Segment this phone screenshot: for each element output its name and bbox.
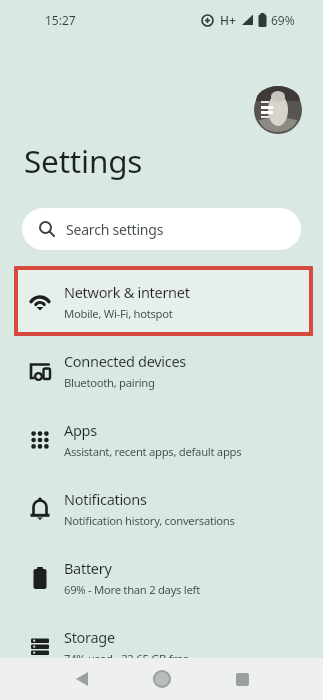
button[interactable]: Search settings <box>22 208 301 250</box>
staticText: Search settings <box>66 220 164 239</box>
staticText: Mobile, Wi-Fi, hotspot <box>64 306 173 321</box>
staticText: Connected devices <box>64 351 186 371</box>
staticText: 69% - More than 2 days left <box>64 582 200 597</box>
button[interactable]: Apps <box>0 405 323 474</box>
button[interactable]: Notifications <box>0 474 323 543</box>
staticText: Notifications <box>64 489 147 509</box>
staticText: Apps <box>64 420 97 440</box>
staticText: Settings <box>24 139 143 182</box>
staticText: Bluetooth, pairing <box>64 375 155 390</box>
staticText: Notification history, conversations <box>64 513 235 528</box>
staticText: Assistant, recent apps, default apps <box>64 444 242 459</box>
staticText: H+ <box>220 12 236 28</box>
staticText: 69% <box>271 12 295 28</box>
staticText: 74% used - 32.65 GB free <box>64 651 189 666</box>
staticText: 15:27 <box>45 12 76 28</box>
staticText: Network & internet <box>64 282 190 302</box>
button[interactable]: Battery <box>0 543 323 612</box>
staticText: Battery <box>64 558 112 578</box>
button[interactable]: Connected devices <box>0 336 323 405</box>
button[interactable]: Storage <box>0 612 323 681</box>
button[interactable]: Network & internet <box>0 267 323 336</box>
button[interactable] <box>254 86 302 134</box>
button[interactable] <box>75 672 89 686</box>
button[interactable] <box>236 673 249 686</box>
button[interactable] <box>153 670 171 688</box>
staticText: Storage <box>64 627 115 647</box>
